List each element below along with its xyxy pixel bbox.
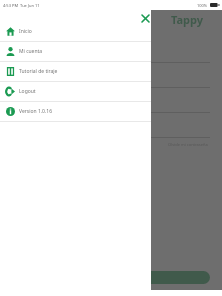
staticText: Tutorial de tiraje [19, 68, 58, 75]
staticText: Inicio [19, 28, 32, 35]
staticText: Mi cuenta [19, 48, 43, 55]
staticText: Tappy [171, 12, 204, 27]
button[interactable]: INGRESAR [12, 271, 210, 284]
button[interactable]: Version 1.0.16 [0, 102, 151, 122]
button[interactable]: Inicio [0, 22, 151, 42]
staticText: Olvide mi contraseña [168, 142, 208, 147]
button[interactable]: Logout [0, 82, 151, 102]
staticText: 4:53 PM Tue Jun 11 [3, 3, 40, 8]
staticText: Version 1.0.16 [19, 108, 53, 115]
staticText: 100% [197, 3, 208, 8]
button[interactable]: Tutorial de tiraje [0, 62, 151, 82]
button[interactable]: Close navigation menu [138, 11, 152, 25]
staticText: Logout [19, 88, 36, 95]
button[interactable]: Mi cuenta [0, 42, 151, 62]
